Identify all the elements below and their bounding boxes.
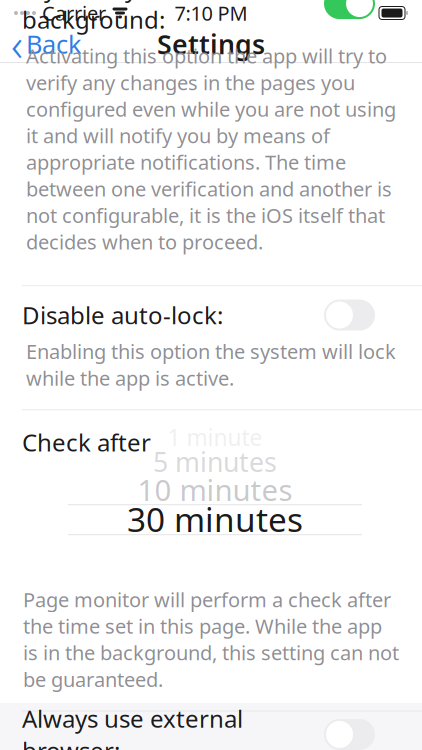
staticText: Back [26,27,82,61]
button[interactable]: ‹ [0,26,94,62]
button[interactable]: Disable auto-lock: [0,292,422,338]
staticText: Always use external browser: [22,702,243,750]
staticText: ‹ [11,14,23,74]
staticText: Try to stay in the background: [22,0,208,35]
staticText: 5 minutes [153,444,277,479]
button[interactable]: Try to stay in the background: [0,0,422,27]
staticText: Carrier [42,0,106,26]
staticText: Settings [157,26,265,62]
staticText: Disable auto-lock: [22,299,223,331]
staticText: 1 minute [167,422,262,452]
staticText: Check after [22,426,151,458]
staticText: Enabling this option the system will loc… [26,338,396,391]
staticText: Activating this option the app will try … [26,43,396,255]
button[interactable]: Always use external browser: [0,711,422,750]
staticText: 30 minutes [127,497,303,541]
staticText: Page monitor will perform a check after … [23,586,399,692]
staticText: 10 minutes [137,470,292,509]
button[interactable]: Check after interval picker [68,426,362,544]
staticText: 7:10 PM [174,0,247,26]
